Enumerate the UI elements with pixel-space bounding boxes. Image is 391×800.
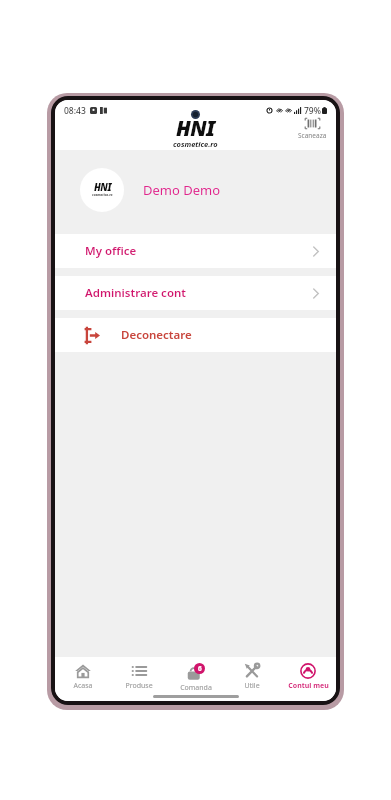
button[interactable]: 6: [168, 661, 224, 695]
staticText: 08:43: [64, 105, 86, 117]
staticText: Scaneaza: [298, 131, 327, 140]
staticText: My office: [85, 243, 137, 259]
staticText: HNI: [94, 181, 112, 194]
button[interactable]: HNI: [55, 162, 336, 218]
staticText: Administrare cont: [85, 285, 186, 301]
staticText: cosmetice.ro: [92, 192, 113, 197]
staticText: cosmetice.ro: [173, 139, 218, 149]
button[interactable]: My office: [55, 234, 336, 268]
staticText: HNI: [176, 114, 215, 142]
button[interactable]: Acasa: [55, 661, 111, 693]
staticText: Acasa: [73, 681, 93, 691]
staticText: Comanda: [180, 683, 212, 693]
button[interactable]: Scaneaza: [298, 117, 327, 140]
staticText: Utile: [244, 681, 260, 691]
staticText: 79%: [304, 105, 321, 117]
staticText: Demo Demo: [143, 181, 221, 199]
button[interactable]: Utile: [224, 661, 280, 693]
staticText: Deconectare: [121, 327, 192, 343]
button[interactable]: Deconectare: [55, 318, 336, 352]
button[interactable]: Administrare cont: [55, 276, 336, 310]
staticText: 6: [198, 664, 202, 673]
staticText: Produse: [125, 681, 153, 691]
button[interactable]: Produse: [111, 661, 167, 693]
button[interactable]: Contul meu: [280, 661, 336, 693]
staticText: Contul meu: [288, 681, 329, 691]
